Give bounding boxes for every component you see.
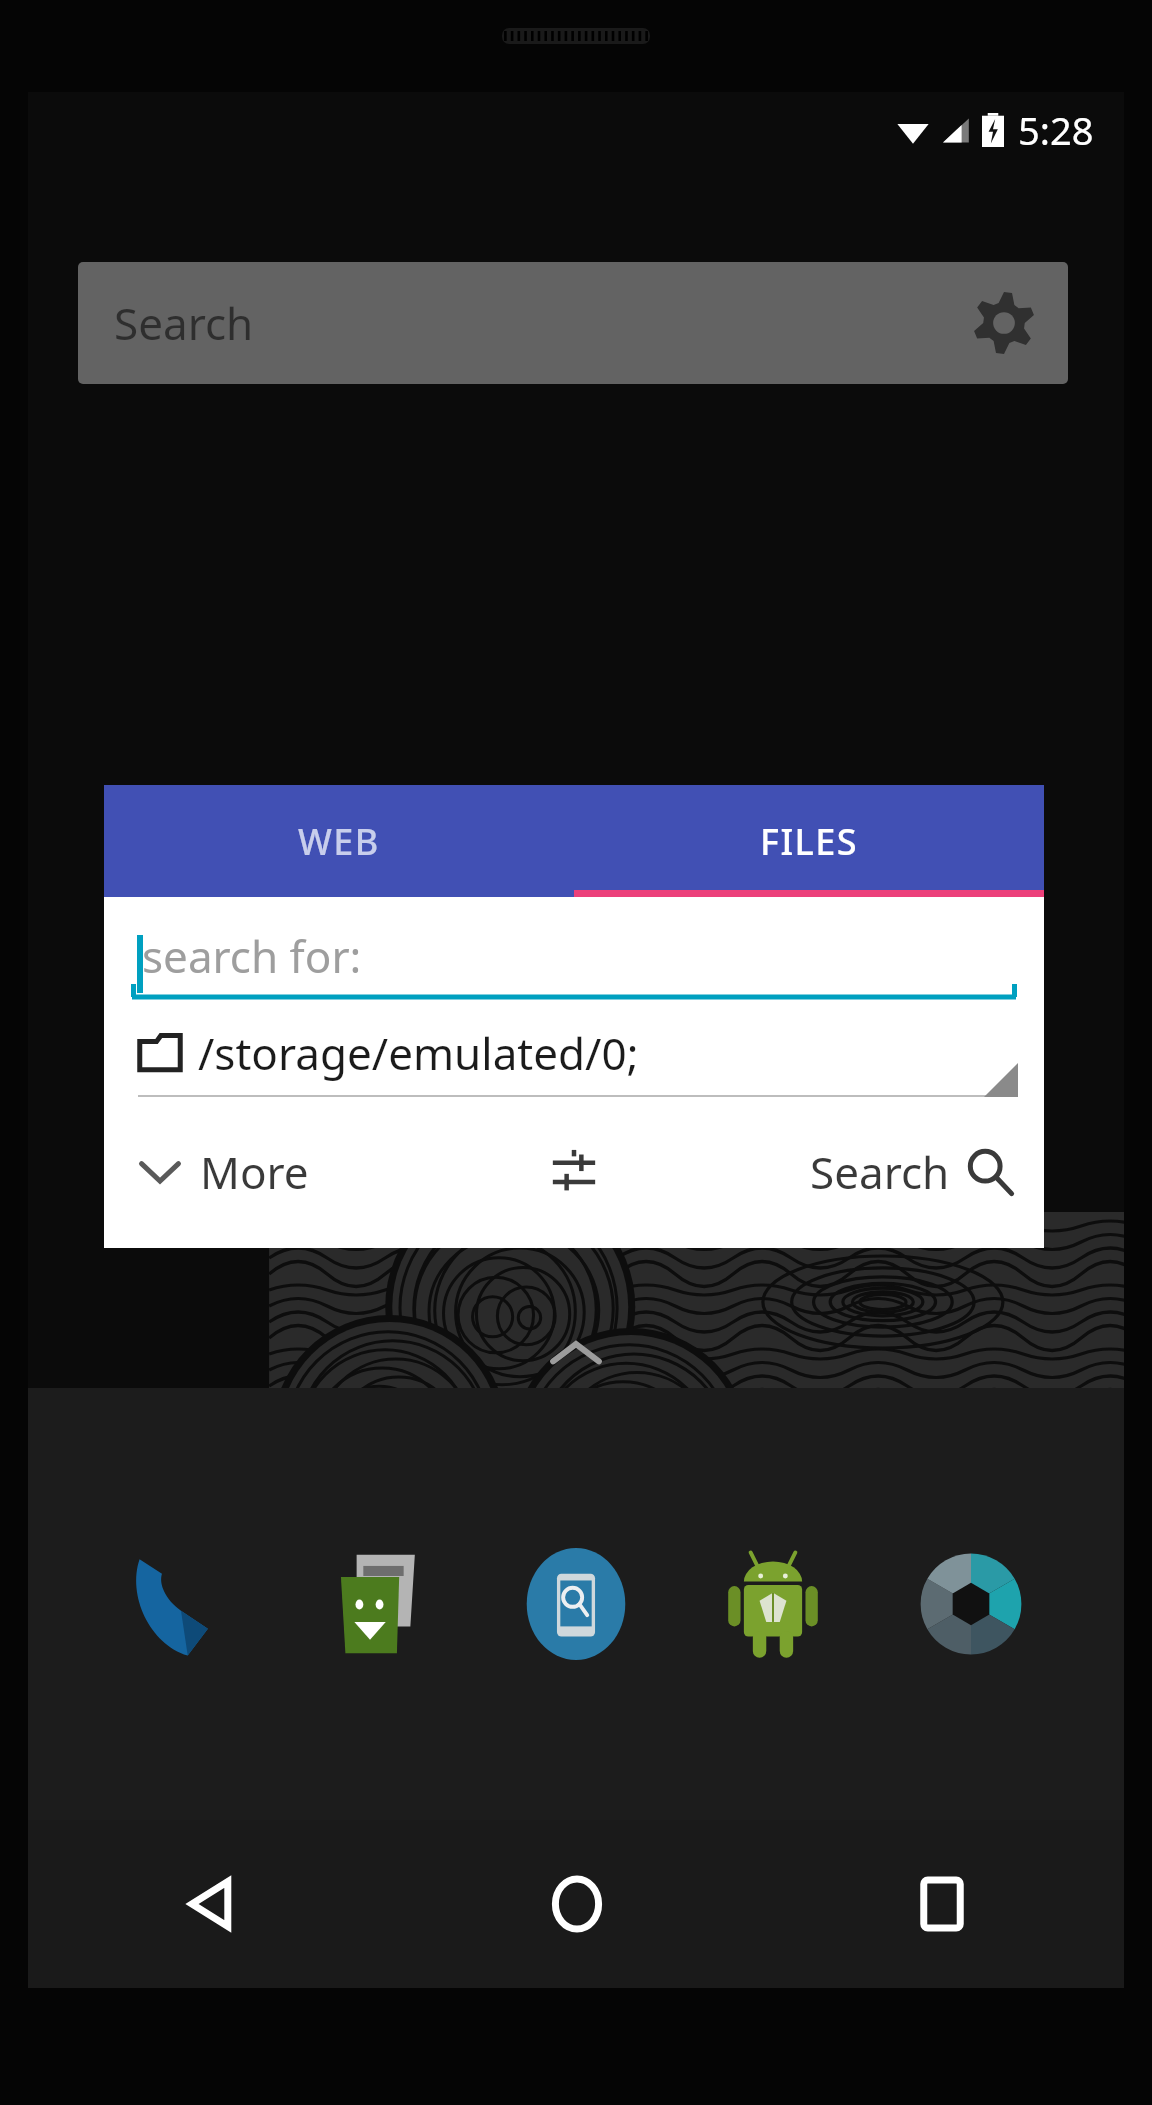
button[interactable]: Android <box>703 1534 843 1674</box>
button[interactable]: Messaging <box>309 1534 449 1674</box>
staticText: WEB <box>298 817 380 866</box>
button[interactable]: search for: <box>104 897 1044 1015</box>
button[interactable]: More <box>104 1117 452 1227</box>
button[interactable]: Home <box>394 1820 759 1988</box>
button[interactable]: Search <box>78 262 1068 384</box>
button[interactable]: FILES <box>574 785 1044 897</box>
button[interactable]: Search <box>696 1117 1044 1227</box>
button[interactable]: Search options <box>452 1117 696 1227</box>
button[interactable]: Phone <box>111 1534 251 1674</box>
button[interactable]: Device search <box>506 1534 646 1674</box>
staticText: FILES <box>760 817 858 866</box>
staticText: search for: <box>142 926 362 986</box>
staticText: More <box>200 1142 309 1202</box>
staticText: 5:28 <box>1018 104 1094 156</box>
button[interactable]: Search settings <box>968 287 1040 359</box>
staticText: Search <box>114 293 254 353</box>
button[interactable]: /storage/emulated/0; <box>104 1015 1044 1117</box>
button[interactable]: WEB <box>104 785 574 897</box>
button[interactable]: Back <box>28 1820 394 1988</box>
staticText: Search <box>810 1142 950 1202</box>
staticText: /storage/emulated/0; <box>198 1023 639 1083</box>
button[interactable]: Recent apps <box>759 1820 1124 1988</box>
button[interactable]: Camera <box>901 1534 1041 1674</box>
